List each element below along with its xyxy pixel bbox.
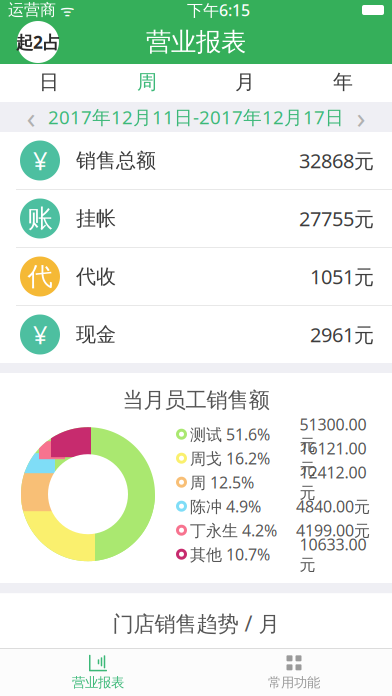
staticText: 周 12.5%	[190, 472, 254, 493]
staticText: 门店销售趋势 / 月	[112, 609, 279, 637]
button[interactable]: 账	[0, 190, 392, 247]
staticText: 当月员工销售额	[122, 387, 269, 413]
staticText: 起2占	[16, 30, 60, 53]
staticText: 营业报表	[72, 674, 124, 691]
button[interactable]: 营业报表	[0, 649, 196, 696]
staticText: 常用功能	[268, 674, 320, 691]
staticText: 年	[333, 70, 353, 94]
button[interactable]: 年	[294, 64, 392, 102]
button[interactable]: 周	[98, 64, 196, 102]
button[interactable]: 日	[0, 64, 98, 102]
staticText: 月	[235, 70, 255, 94]
staticText: 51300.00元	[299, 414, 366, 455]
staticText: 27755元	[299, 205, 374, 232]
staticText: 代收	[76, 264, 116, 289]
button[interactable]: ¥	[0, 306, 392, 363]
staticText: 4840.00元	[296, 496, 370, 517]
staticText: 挂帐	[76, 206, 116, 231]
staticText: ‹	[26, 97, 35, 136]
staticText: 运营商	[8, 0, 56, 20]
button[interactable]: 常用功能	[196, 649, 392, 696]
staticText: 16121.00元	[299, 438, 366, 479]
staticText: 1051元	[310, 263, 374, 290]
staticText: 销售总额	[76, 148, 156, 173]
button[interactable]: 下一周	[344, 102, 378, 132]
staticText: 10633.00元	[299, 534, 366, 575]
staticText: 4199.00元	[296, 520, 370, 541]
staticText: ¥	[33, 144, 47, 177]
staticText: 2961元	[310, 321, 374, 348]
staticText: 其他 10.7%	[190, 544, 270, 565]
staticText: 日	[39, 70, 59, 94]
button[interactable]: 代	[0, 248, 392, 305]
staticText: ¥	[33, 318, 47, 351]
staticText: 32868元	[299, 147, 374, 174]
staticText: 营业报表	[146, 26, 246, 57]
staticText: ᯤ	[56, 0, 75, 21]
staticText: 丁永生 4.2%	[190, 520, 277, 541]
staticText: 周	[137, 70, 157, 94]
staticText: ›	[356, 97, 365, 136]
staticText: 陈冲 4.9%	[190, 496, 261, 517]
staticText: 下午6:15	[187, 0, 250, 21]
button[interactable]: ¥	[0, 132, 392, 189]
staticText: 账	[27, 203, 52, 234]
staticText: 代	[27, 261, 52, 292]
staticText: 现金	[76, 322, 116, 347]
button[interactable]: 月	[196, 64, 294, 102]
staticText: 2017年12月11日-2017年12月17日	[48, 105, 344, 129]
staticText: 12412.00元	[299, 462, 366, 503]
button[interactable]: 上一周	[14, 102, 48, 132]
staticText: 测试 51.6%	[190, 424, 270, 445]
staticText: 周戈 16.2%	[190, 448, 270, 469]
